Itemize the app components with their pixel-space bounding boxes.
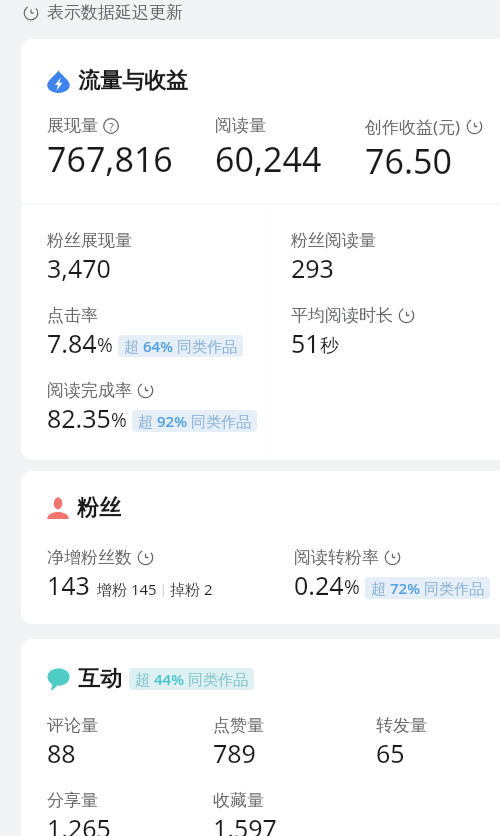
button[interactable]: 分享量 — [47, 790, 213, 836]
button[interactable]: 展现量 — [47, 115, 215, 182]
staticText: 超 — [371, 578, 390, 598]
button[interactable]: Completion rate update delay info — [137, 382, 154, 399]
staticText: 点赞量 — [213, 715, 264, 736]
staticText: % — [97, 332, 113, 358]
staticText: 同类作品 — [187, 411, 251, 431]
staticText: 92% — [157, 411, 187, 431]
button[interactable]: 创作收益(元) — [365, 115, 500, 184]
button[interactable]: 阅读完成率 — [47, 380, 257, 435]
staticText: 互动 — [78, 665, 122, 693]
staticText: 82.35 — [47, 401, 111, 435]
staticText: 64% — [143, 336, 173, 356]
staticText: 767,816 — [47, 136, 173, 182]
staticText: 65 — [376, 736, 405, 770]
staticText: 表示数据延迟更新 — [47, 2, 183, 23]
staticText: 增粉 145 — [97, 579, 157, 599]
staticText: 掉粉 2 — [170, 579, 213, 599]
button[interactable]: 粉丝 — [47, 494, 121, 522]
staticText: 同类作品 — [184, 669, 248, 689]
button[interactable]: 点击率 — [47, 305, 243, 360]
button[interactable]: 表示数据延迟更新 — [0, 0, 500, 23]
staticText: % — [344, 574, 360, 600]
staticText: 粉丝阅读量 — [291, 230, 376, 251]
staticText: 收藏量 — [213, 790, 264, 811]
button[interactable]: 互动 — [47, 665, 254, 693]
staticText: 7.84 — [47, 326, 97, 360]
staticText: 同类作品 — [173, 336, 237, 356]
staticText: 阅读量 — [215, 115, 266, 136]
staticText: 3,470 — [47, 251, 111, 285]
button[interactable]: 收藏量 — [213, 790, 376, 836]
staticText: 143 — [47, 568, 90, 602]
staticText: 点击率 — [47, 305, 98, 326]
staticText: | — [157, 581, 170, 597]
button[interactable]: 流量与收益 — [47, 67, 188, 95]
staticText: 789 — [213, 736, 256, 770]
staticText: 展现量 — [47, 115, 98, 136]
staticText: 评论量 — [47, 715, 98, 736]
button[interactable]: 平均阅读时长 — [291, 305, 415, 360]
staticText: 60,244 — [215, 136, 322, 182]
button[interactable]: 阅读量 — [215, 115, 365, 182]
staticText: 创作收益(元) — [365, 115, 461, 138]
staticText: 阅读完成率 — [47, 380, 132, 401]
staticText: 超 — [138, 411, 157, 431]
staticText: 阅读转粉率 — [294, 547, 379, 568]
button[interactable]: 净增粉丝数 — [47, 547, 294, 602]
staticText: 同类作品 — [420, 578, 484, 598]
staticText: 293 — [291, 251, 334, 285]
button[interactable]: Read-to-follower rate update delay info — [384, 549, 401, 566]
staticText: 净增粉丝数 — [47, 547, 132, 568]
staticText: 0.24 — [294, 568, 344, 602]
staticText: 44% — [154, 669, 184, 689]
button[interactable]: 粉丝展现量 — [47, 230, 132, 285]
staticText: 流量与收益 — [78, 67, 188, 95]
staticText: 72% — [390, 578, 420, 598]
staticText: 超 — [124, 336, 143, 356]
button[interactable]: Net new followers update delay info — [137, 549, 154, 566]
button[interactable]: Average read time update delay info — [398, 307, 415, 324]
staticText: 转发量 — [376, 715, 427, 736]
button[interactable]: Earnings update delay info — [466, 118, 483, 135]
staticText: % — [111, 407, 127, 433]
staticText: 秒 — [320, 334, 339, 358]
staticText: 76.50 — [365, 138, 452, 184]
staticText: 粉丝展现量 — [47, 230, 132, 251]
button[interactable]: What is impressions — [103, 118, 119, 134]
staticText: 88 — [47, 736, 76, 770]
button[interactable]: 粉丝阅读量 — [291, 230, 376, 285]
button[interactable]: 点赞量 — [213, 715, 376, 770]
staticText: 1,597 — [213, 811, 277, 836]
staticText: 超 — [135, 669, 154, 689]
staticText: ? — [109, 119, 114, 134]
staticText: 平均阅读时长 — [291, 305, 393, 326]
staticText: 51 — [291, 326, 320, 360]
staticText: 分享量 — [47, 790, 98, 811]
staticText: 粉丝 — [77, 494, 121, 522]
button[interactable]: 评论量 — [47, 715, 213, 770]
button[interactable]: 转发量 — [376, 715, 500, 770]
button[interactable]: 阅读转粉率 — [294, 547, 500, 602]
staticText: 1,265 — [47, 811, 111, 836]
